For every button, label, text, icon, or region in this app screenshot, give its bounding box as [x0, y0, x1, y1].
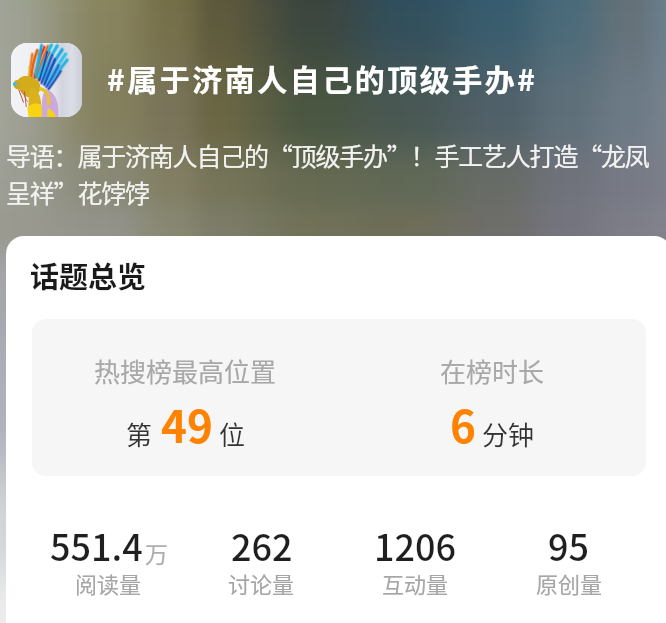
staticText: 话题总览: [30, 254, 147, 296]
staticText: 互动量: [382, 567, 449, 599]
button[interactable]: 1206: [338, 519, 492, 603]
button[interactable]: 95: [492, 519, 646, 603]
button[interactable]: 热搜榜最高位置: [32, 319, 339, 476]
staticText: 导语：属于济南人自己的“顶级手办”！手工艺人打造“龙凤 呈祥”花饽饽: [6, 137, 658, 210]
button[interactable]: 在榜时长: [339, 319, 646, 476]
staticText: 讨论量: [228, 567, 295, 599]
staticText: 分钟: [482, 415, 535, 453]
staticText: 阅读量: [75, 567, 142, 599]
button[interactable]: 262: [185, 519, 338, 603]
staticText: 49: [161, 392, 213, 456]
staticText: 95: [548, 519, 590, 571]
staticText: #属于济南人自己的顶级手办#: [107, 56, 538, 99]
staticText: 1206: [374, 519, 457, 571]
button[interactable]: 话题头像: [11, 43, 82, 117]
staticText: 热搜榜最高位置: [94, 352, 277, 390]
staticText: 万: [145, 536, 168, 569]
staticText: 原创量: [536, 567, 603, 599]
button[interactable]: 551.4: [32, 519, 185, 603]
staticText: 262: [231, 519, 293, 571]
staticText: 第: [126, 415, 153, 453]
staticText: 551.4: [50, 519, 143, 571]
staticText: 6: [450, 392, 476, 456]
staticText: 在榜时长: [440, 352, 545, 390]
staticText: 位: [219, 415, 246, 453]
